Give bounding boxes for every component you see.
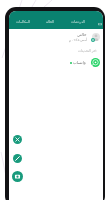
staticText: أمس ٠٩:٤٥ م xyxy=(69,38,87,42)
button[interactable]: المكالمات xyxy=(9,19,36,25)
button[interactable]: حالتي xyxy=(9,29,103,44)
button[interactable]: Close xyxy=(13,135,22,144)
staticText: حالتي xyxy=(77,32,87,37)
staticText: المكالمات xyxy=(16,20,30,24)
staticText: الحالة xyxy=(46,20,54,24)
button[interactable]: New chat xyxy=(13,154,22,163)
staticText: الدردشات xyxy=(71,20,85,24)
button[interactable]: Camera xyxy=(12,171,23,182)
button[interactable]: الدردشات xyxy=(64,19,92,25)
button[interactable]: الحالة xyxy=(36,19,64,25)
button[interactable]: Camera xyxy=(96,20,103,27)
staticText: واتساب xyxy=(73,60,86,65)
staticText: آخر التحديثات xyxy=(78,48,97,52)
button[interactable]: واتساب xyxy=(9,55,103,70)
